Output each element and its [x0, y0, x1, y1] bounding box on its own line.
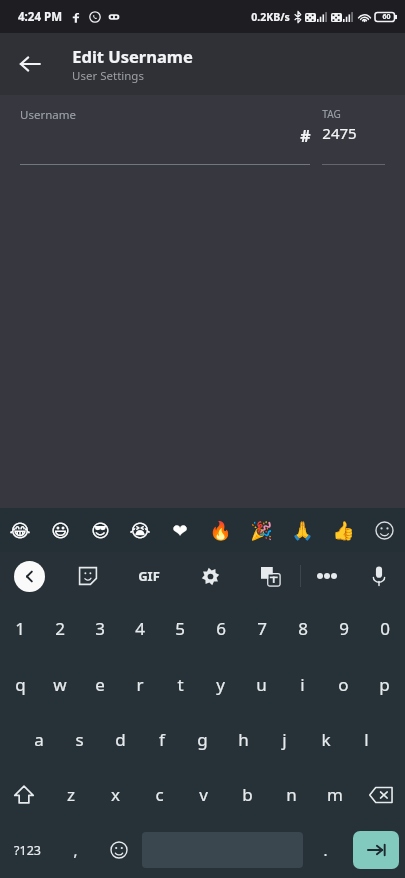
staticText: Username [20, 107, 76, 123]
button[interactable]: 😂 [0, 508, 40, 552]
staticText: i [300, 673, 305, 696]
button[interactable]: c [137, 767, 181, 822]
button[interactable]: a [18, 712, 59, 767]
button[interactable]: 0 [364, 600, 405, 657]
button[interactable]: Stickers [58, 552, 118, 600]
button[interactable]: TAG [322, 103, 385, 165]
button[interactable]: q [0, 657, 40, 712]
staticText: c [155, 783, 164, 806]
staticText: 4 [135, 617, 145, 640]
staticText: e [95, 673, 105, 696]
staticText: 4:24 PM [18, 9, 62, 25]
button[interactable]: j [264, 712, 305, 767]
staticText: 8 [298, 617, 308, 640]
staticText: 😎 [91, 520, 110, 541]
button[interactable]: 7 [241, 600, 282, 657]
button[interactable]: x [93, 767, 137, 822]
staticText: j [282, 728, 287, 751]
staticText: Edit Username [72, 45, 193, 67]
button[interactable]: ❤️ [160, 508, 200, 552]
button[interactable]: y [200, 657, 241, 712]
button[interactable]: 9 [323, 600, 364, 657]
button[interactable]: 😃 [40, 508, 80, 552]
staticText: m [327, 783, 343, 806]
button[interactable]: 👍 [323, 508, 364, 552]
button[interactable]: p [364, 657, 405, 712]
button[interactable]: z [48, 767, 93, 822]
staticText: ?123 [14, 842, 41, 859]
staticText: s [75, 728, 84, 751]
staticText: 5 [175, 617, 185, 640]
button[interactable]: 😭 [120, 508, 160, 552]
button[interactable]: Enter [353, 831, 399, 869]
button[interactable]: t [160, 657, 200, 712]
button[interactable]: 5 [160, 600, 200, 657]
staticText: 1 [15, 617, 25, 640]
button[interactable]: i [282, 657, 323, 712]
button[interactable]: o [323, 657, 364, 712]
staticText: 🔥 [209, 520, 232, 541]
staticText: 2 [55, 617, 65, 640]
staticText: 😃 [51, 520, 70, 541]
button[interactable]: Translate [240, 552, 300, 600]
staticText: x [111, 783, 120, 806]
staticText: o [338, 673, 349, 696]
button[interactable]: 😎 [80, 508, 120, 552]
button[interactable]: b [225, 767, 269, 822]
button[interactable]: g [182, 712, 223, 767]
staticText: h [238, 728, 249, 751]
staticText: 😭 [129, 520, 151, 541]
button[interactable]: s [59, 712, 100, 767]
button[interactable]: 🎉 [241, 508, 282, 552]
button[interactable]: More options [301, 552, 353, 600]
button[interactable]: 2 [40, 600, 80, 657]
button[interactable]: n [269, 767, 313, 822]
button[interactable]: k [305, 712, 346, 767]
button[interactable]: Back [6, 40, 54, 88]
button[interactable]: GIF [118, 552, 180, 600]
button[interactable]: Backspace [357, 767, 405, 822]
button[interactable]: 8 [282, 600, 323, 657]
button[interactable]: l [346, 712, 387, 767]
staticText: w [53, 673, 67, 696]
staticText: , [73, 840, 78, 860]
staticText: 7 [257, 617, 267, 640]
button[interactable]: 1 [0, 600, 40, 657]
button[interactable]: More emoji [364, 508, 405, 552]
button[interactable]: Back to keyboard [0, 552, 58, 600]
button[interactable]: r [120, 657, 160, 712]
staticText: y [216, 673, 225, 696]
button[interactable]: Emoji [96, 822, 142, 878]
staticText: 0.2KB/s [251, 10, 290, 24]
button[interactable]: h [223, 712, 264, 767]
button[interactable]: 6 [200, 600, 241, 657]
staticText: z [67, 783, 75, 806]
staticText: 3 [95, 617, 105, 640]
button[interactable]: . [303, 822, 347, 878]
button[interactable]: d [100, 712, 141, 767]
button[interactable]: Username [20, 103, 310, 165]
staticText: 9 [339, 617, 349, 640]
staticText: User Settings [72, 68, 144, 84]
button[interactable]: f [141, 712, 182, 767]
button[interactable]: Voice input [353, 552, 405, 600]
staticText: p [379, 673, 390, 696]
button[interactable]: u [241, 657, 282, 712]
button[interactable]: Shift [0, 767, 48, 822]
button[interactable]: ?123 [0, 822, 54, 878]
button[interactable]: 🔥 [200, 508, 241, 552]
button[interactable]: m [313, 767, 357, 822]
button[interactable]: 4 [120, 600, 160, 657]
staticText: 2475 [322, 123, 357, 143]
button[interactable]: 🙏 [282, 508, 323, 552]
staticText: f [159, 728, 165, 751]
button[interactable]: w [40, 657, 80, 712]
button[interactable]: e [80, 657, 120, 712]
staticText: l [364, 728, 369, 751]
button[interactable]: v [181, 767, 225, 822]
staticText: 0 [380, 617, 390, 640]
button[interactable]: Settings [180, 552, 240, 600]
button[interactable]: , [54, 822, 96, 878]
button[interactable]: 3 [80, 600, 120, 657]
